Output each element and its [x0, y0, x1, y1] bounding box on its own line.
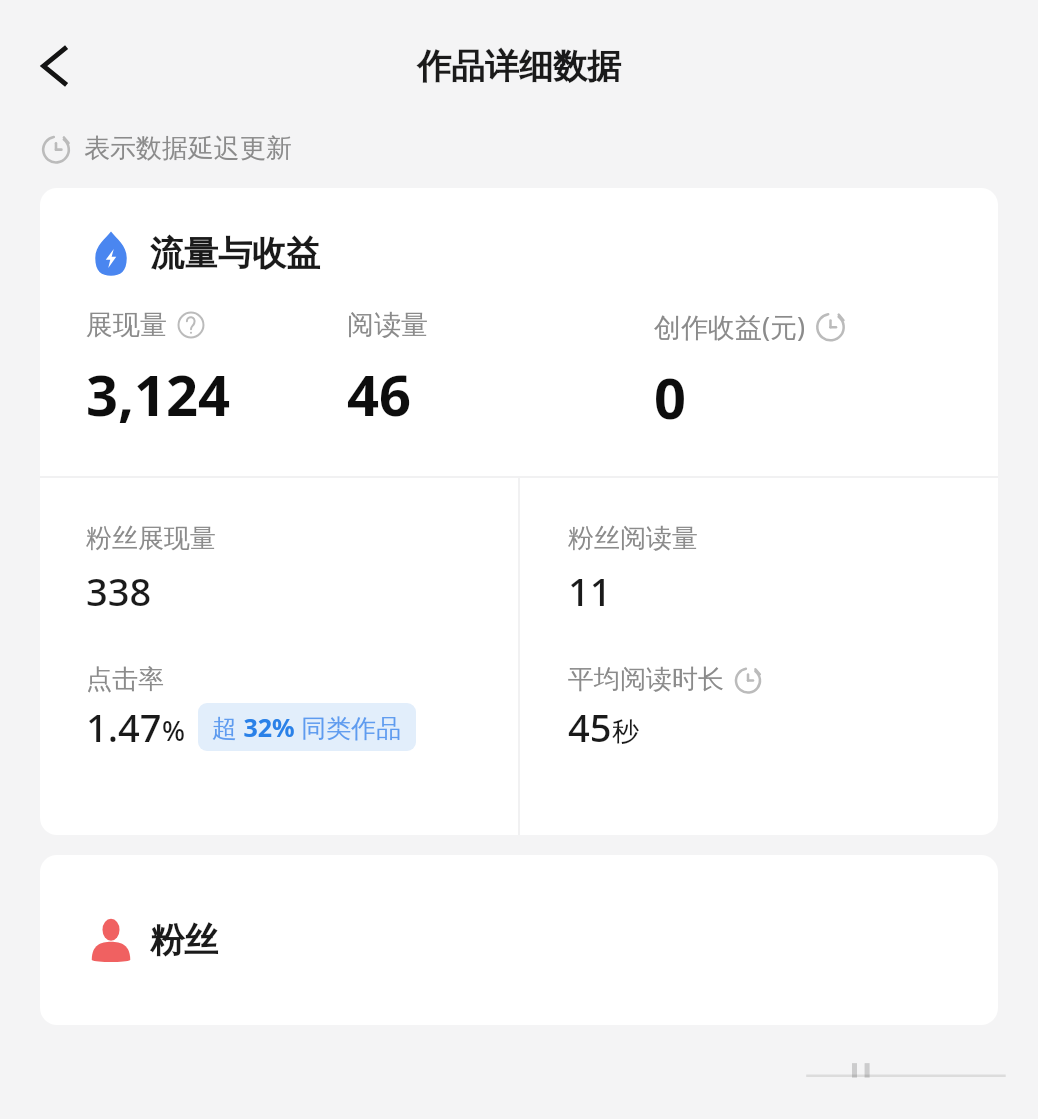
staticText: 338 — [86, 565, 152, 617]
staticText: 超 32% 同类作品 — [212, 710, 402, 744]
button[interactable]: 阅读量 — [347, 308, 654, 432]
staticText: 创作收益(元) — [654, 308, 806, 345]
button[interactable]: Back — [16, 26, 96, 106]
staticText: 展现量 — [86, 308, 167, 342]
staticText: 阅读量 — [347, 308, 428, 342]
staticText: 秒 — [612, 715, 639, 749]
staticText: 平均阅读时长 — [568, 663, 724, 696]
staticText: 11 — [568, 565, 612, 617]
staticText: 作品详细数据 — [417, 45, 621, 88]
staticText: 46 — [347, 356, 412, 432]
button[interactable]: 展现量 — [86, 308, 347, 432]
staticText: 点击率 — [86, 663, 164, 696]
button[interactable]: 创作收益(元) — [654, 308, 998, 435]
staticText: 粉丝 — [150, 919, 218, 962]
staticText: 1.47 — [86, 701, 162, 753]
staticText: 粉丝展现量 — [86, 522, 216, 555]
button[interactable]: 超 32% 同类作品 — [198, 703, 416, 751]
button[interactable]: 粉丝 — [86, 915, 998, 965]
staticText: 45 — [568, 701, 612, 753]
button[interactable]: 流量与收益 — [86, 228, 998, 278]
staticText: % — [162, 712, 186, 749]
staticText: 表示数据延迟更新 — [84, 132, 292, 165]
staticText: 粉丝阅读量 — [568, 522, 698, 555]
staticText: 3,124 — [86, 356, 231, 432]
staticText: 0 — [654, 359, 687, 435]
staticText: 流量与收益 — [150, 232, 320, 275]
